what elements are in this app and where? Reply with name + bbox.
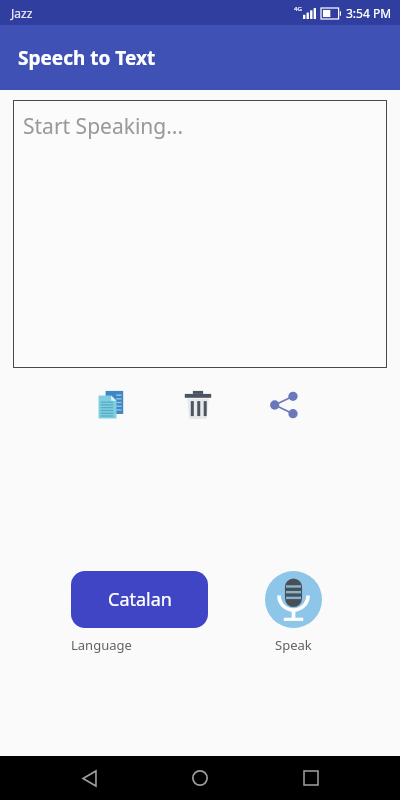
button[interactable]: Speak (265, 571, 322, 628)
staticText: Catalan (108, 587, 172, 612)
staticText: Speech to Text (18, 45, 156, 71)
button[interactable]: Delete (174, 381, 222, 429)
button[interactable]: Copy (88, 381, 136, 429)
staticText: Speak (275, 636, 312, 654)
button[interactable]: Start Speaking... (13, 100, 387, 368)
staticText: Language (71, 636, 208, 654)
button[interactable]: Back (67, 756, 111, 800)
button[interactable]: Catalan (71, 571, 208, 628)
button[interactable]: Share (260, 381, 308, 429)
button[interactable]: Home (178, 756, 222, 800)
staticText: Start Speaking... (23, 112, 184, 141)
staticText: 3:54 PM (346, 5, 392, 21)
button[interactable]: Recent apps (289, 756, 333, 800)
staticText: 4G (294, 5, 302, 13)
staticText: Jazz (11, 5, 33, 21)
